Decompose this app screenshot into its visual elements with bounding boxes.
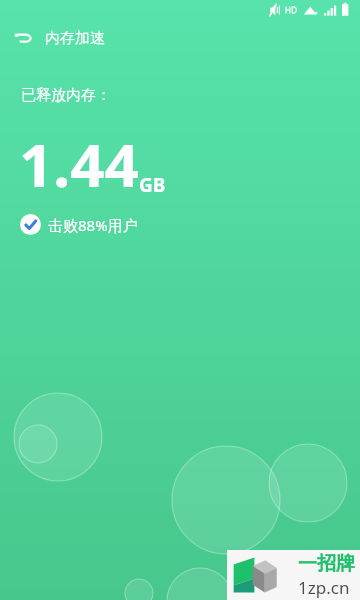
button[interactable]: Back: [5, 20, 41, 56]
staticText: 一招牌: [298, 552, 355, 576]
staticText: 1zp.cn: [298, 576, 350, 599]
staticText: GB: [139, 172, 166, 198]
staticText: 1.44: [19, 123, 139, 205]
staticText: 内存加速: [45, 29, 105, 48]
staticText: 击败88%用户: [48, 215, 138, 235]
staticText: 已释放内存：: [21, 86, 111, 105]
